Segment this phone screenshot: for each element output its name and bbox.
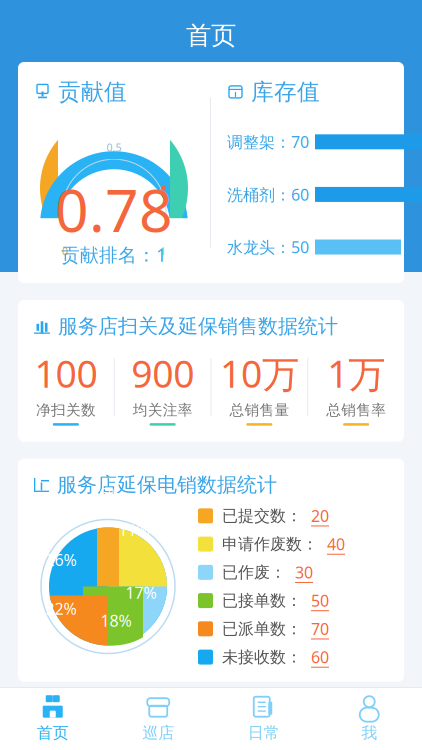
- staticText: 我: [361, 723, 377, 743]
- staticText: 70: [311, 618, 329, 639]
- staticText: 水龙头：50: [227, 236, 309, 258]
- staticText: 30: [295, 562, 313, 583]
- button[interactable]: 我: [316, 687, 422, 750]
- button[interactable]: 日常: [211, 687, 316, 750]
- button[interactable]: 巡店: [105, 687, 211, 750]
- staticText: 6%: [99, 483, 121, 614]
- button[interactable]: 首页: [0, 687, 105, 750]
- staticText: 17%: [125, 582, 156, 603]
- staticText: 0.5: [106, 140, 121, 154]
- staticText: 22%: [45, 598, 118, 619]
- staticText: 已派单数：: [222, 619, 302, 639]
- staticText: 11%: [118, 519, 149, 602]
- staticText: 净扫关数: [36, 401, 96, 419]
- staticText: 服务店扫关及延保销售数据统计: [58, 314, 338, 339]
- staticText: 洗桶剂：60: [227, 184, 309, 205]
- staticText: 申请作废数：: [222, 534, 318, 554]
- staticText: 库存值: [251, 78, 320, 106]
- staticText: 调整架：70: [227, 131, 309, 152]
- staticText: 首页: [186, 20, 236, 51]
- staticText: 0: [62, 244, 68, 258]
- staticText: 1: [160, 244, 166, 258]
- staticText: 巡店: [142, 723, 174, 743]
- staticText: 均关注率: [133, 401, 193, 419]
- staticText: 已作废：: [222, 562, 286, 582]
- staticText: 已接单数：: [222, 591, 302, 610]
- staticText: 10万: [220, 349, 299, 398]
- staticText: 18%: [100, 610, 131, 631]
- staticText: 60: [311, 646, 329, 668]
- staticText: 0.78: [55, 170, 173, 248]
- staticText: 贡献值: [58, 78, 127, 106]
- staticText: 已提交数：: [222, 506, 302, 526]
- staticText: 未接收数：: [222, 647, 302, 667]
- staticText: 20: [311, 505, 329, 526]
- staticText: 26%: [45, 549, 118, 592]
- staticText: 900: [131, 349, 194, 398]
- staticText: 总销售量: [229, 401, 289, 419]
- staticText: 贡献排名：1: [61, 242, 167, 267]
- staticText: 首页: [37, 723, 69, 743]
- staticText: 50: [311, 590, 329, 611]
- staticText: 总销售率: [326, 401, 386, 419]
- staticText: 40: [327, 533, 345, 555]
- staticText: 1万: [327, 349, 385, 398]
- staticText: 服务店延保电销数据统计: [57, 473, 277, 497]
- staticText: 日常: [248, 723, 280, 743]
- staticText: 100: [34, 349, 97, 398]
